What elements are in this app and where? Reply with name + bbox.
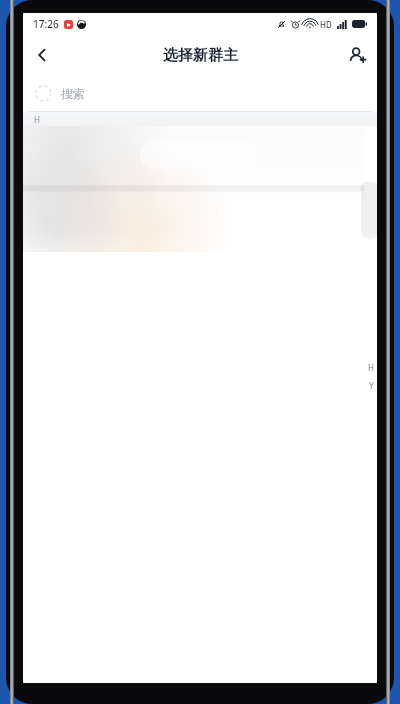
staticText: 选择新群主 bbox=[163, 46, 238, 65]
staticText: 搜索 bbox=[61, 86, 85, 101]
staticText: Y bbox=[369, 380, 374, 391]
button[interactable]: 搜索 bbox=[23, 75, 377, 112]
staticText: H bbox=[34, 114, 40, 125]
staticText: 17:26 bbox=[33, 17, 59, 31]
button[interactable]: Back bbox=[23, 36, 61, 74]
staticText: HD bbox=[320, 19, 332, 30]
button[interactable]: Add member bbox=[337, 35, 377, 75]
staticText: H bbox=[368, 362, 374, 373]
button[interactable]: Contact bbox=[23, 126, 377, 189]
button[interactable]: Contact bbox=[23, 189, 377, 252]
